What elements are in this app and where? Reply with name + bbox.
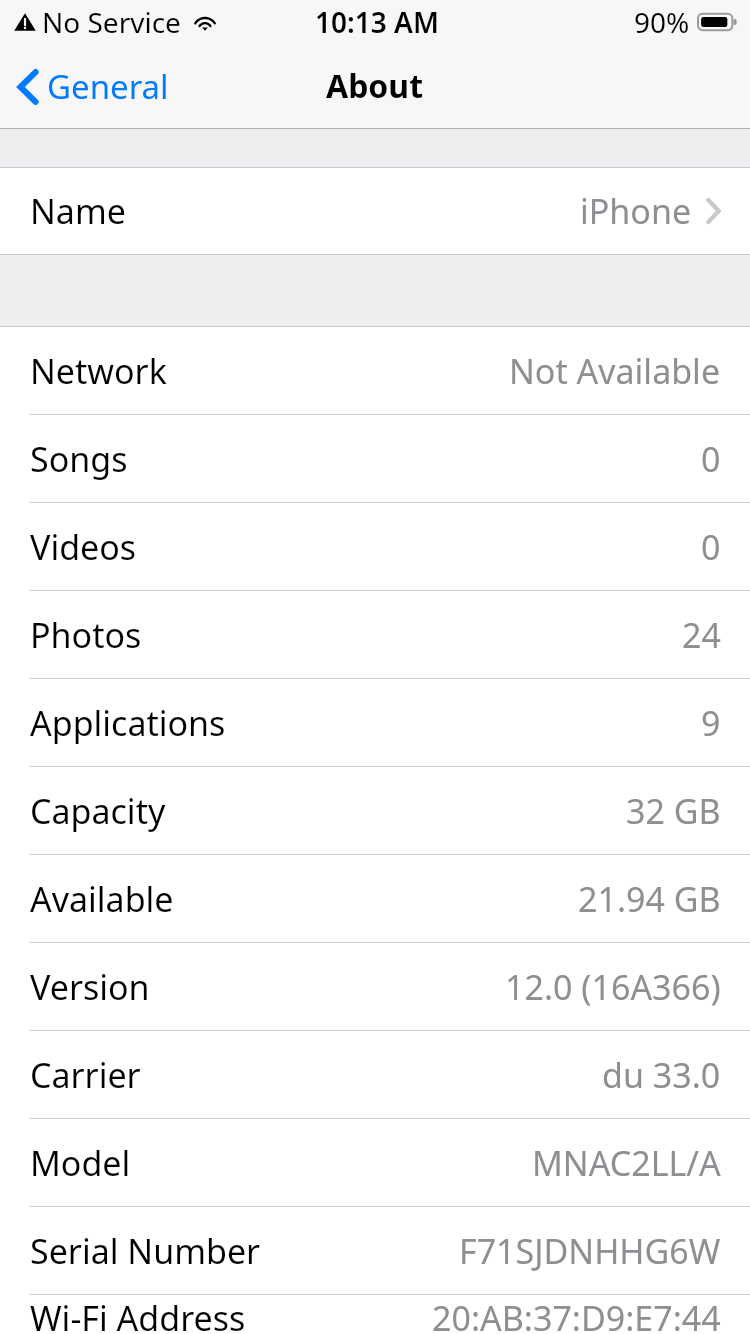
staticText: 12.0 (16A366) (505, 964, 721, 1010)
staticText: du 33.0 (602, 1052, 721, 1098)
button[interactable]: Version (0, 943, 750, 1030)
staticText: 0 (701, 524, 721, 570)
staticText: Photos (30, 612, 142, 658)
staticText: Version (30, 964, 150, 1010)
button[interactable]: Model (0, 1119, 750, 1206)
staticText: Songs (30, 436, 128, 482)
staticText: 9 (701, 700, 721, 746)
staticText: Network (30, 348, 167, 394)
staticText: 32 GB (626, 788, 721, 834)
button[interactable]: Capacity (0, 767, 750, 854)
button[interactable]: General (0, 58, 181, 115)
staticText: F71SJDNHHG6W (459, 1228, 721, 1274)
staticText: Capacity (30, 788, 166, 834)
staticText: Carrier (30, 1052, 141, 1098)
button[interactable]: Name (0, 168, 750, 254)
staticText: 10:13 AM (315, 3, 439, 41)
button[interactable]: Carrier (0, 1031, 750, 1118)
button[interactable]: Songs (0, 415, 750, 502)
button[interactable]: Applications (0, 679, 750, 766)
button[interactable]: Serial Number (0, 1207, 750, 1294)
staticText: 20:AB:37:D9:E7:44 (432, 1295, 721, 1334)
staticText: MNAC2LL/A (532, 1140, 721, 1186)
staticText: 0 (701, 436, 721, 482)
button[interactable]: Available (0, 855, 750, 942)
staticText: No Service (42, 3, 181, 41)
staticText: Applications (30, 700, 226, 746)
staticText: 24 (682, 612, 721, 658)
staticText: Not Available (509, 348, 721, 394)
staticText: Name (30, 188, 126, 234)
staticText: Videos (30, 524, 137, 570)
button[interactable]: Videos (0, 503, 750, 590)
button[interactable]: Network (0, 327, 750, 414)
staticText: General (47, 64, 169, 109)
staticText: About (326, 64, 424, 108)
staticText: Serial Number (30, 1228, 261, 1274)
staticText: iPhone (580, 188, 692, 234)
button[interactable]: Photos (0, 591, 750, 678)
staticText: Model (30, 1140, 131, 1186)
staticText: Available (30, 876, 174, 922)
staticText: 90% (634, 3, 690, 41)
staticText: Wi-Fi Address (30, 1295, 246, 1334)
staticText: 21.94 GB (578, 876, 721, 922)
button[interactable]: Wi-Fi Address (0, 1295, 750, 1334)
